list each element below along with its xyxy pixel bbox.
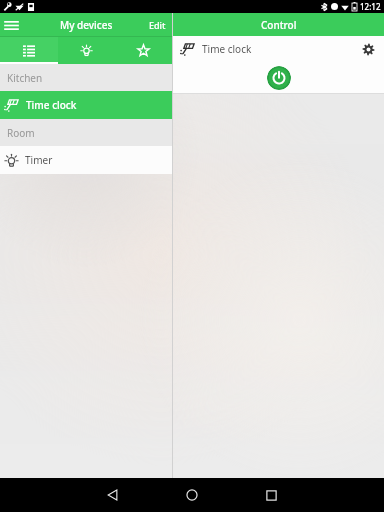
- staticText: My devices: [60, 18, 113, 32]
- button[interactable]: Home: [177, 480, 207, 510]
- button[interactable]: Favorites: [115, 37, 172, 64]
- staticText: 12:12: [360, 1, 381, 12]
- button[interactable]: Back: [98, 480, 128, 510]
- button[interactable]: Time clock: [0, 91, 172, 119]
- button[interactable]: Devices list: [0, 37, 58, 64]
- staticText: Timer: [25, 153, 53, 167]
- staticText: Time clock: [26, 98, 77, 112]
- button[interactable]: Power toggle: [267, 66, 291, 90]
- button[interactable]: Open navigation menu: [0, 14, 22, 36]
- staticText: Kitchen: [7, 71, 43, 85]
- staticText: Room: [7, 126, 35, 140]
- button[interactable]: Edit: [143, 15, 172, 35]
- button[interactable]: Settings: [358, 39, 378, 59]
- staticText: Edit: [149, 19, 166, 31]
- button[interactable]: Recent apps: [256, 480, 286, 510]
- button[interactable]: Timer: [0, 146, 172, 174]
- staticText: Time clock: [202, 42, 252, 56]
- button[interactable]: Lights: [58, 37, 115, 64]
- staticText: Control: [261, 18, 297, 32]
